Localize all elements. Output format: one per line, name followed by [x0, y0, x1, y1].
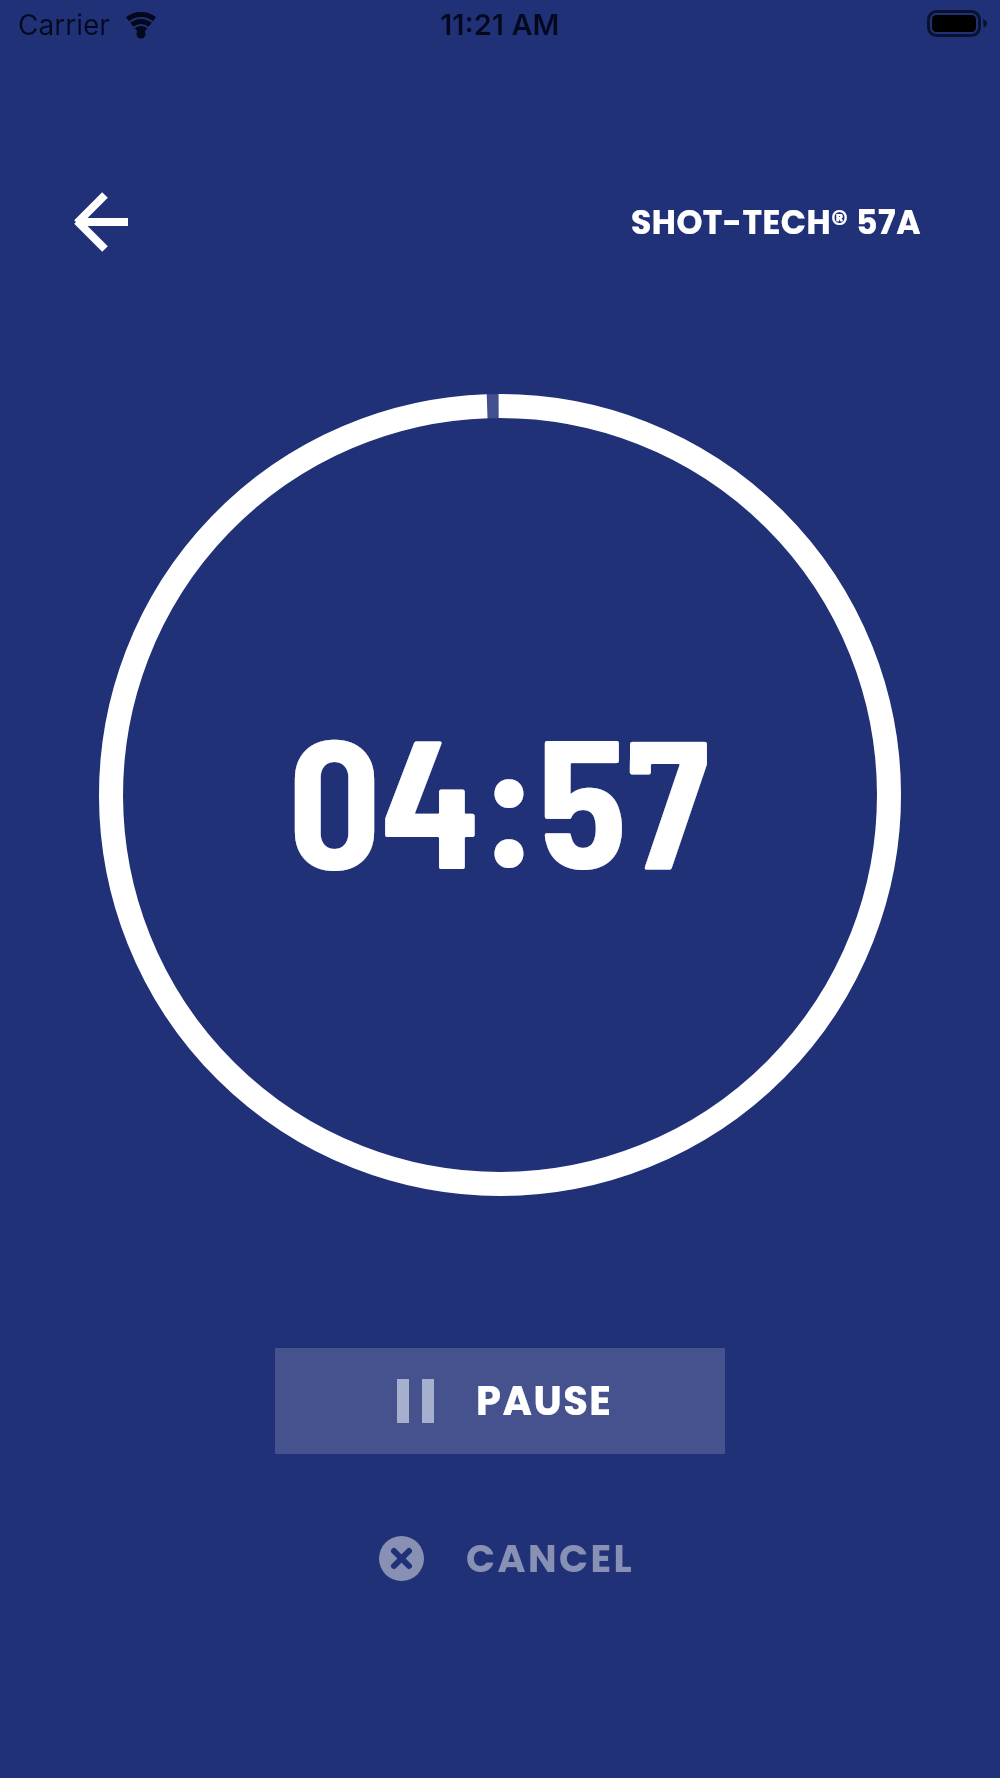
staticText: Carrier	[18, 8, 110, 42]
staticText: SHOT-TECH® 57A	[631, 199, 922, 245]
staticText: 04:57	[288, 687, 709, 905]
button[interactable]: PAUSE	[275, 1348, 725, 1454]
button[interactable]	[70, 188, 138, 256]
staticText: CANCEL	[466, 1532, 635, 1585]
button[interactable]: CANCEL	[379, 1532, 635, 1585]
staticText: 11:21 AM	[440, 7, 560, 42]
staticText: PAUSE	[476, 1373, 613, 1429]
